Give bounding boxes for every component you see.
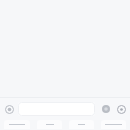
button[interactable]: Suggestion <box>4 120 30 129</box>
button[interactable]: Voice input <box>100 103 112 115</box>
button[interactable]: Suggestion <box>69 120 94 129</box>
button[interactable]: Add attachment <box>3 103 15 115</box>
button[interactable]: Suggestion <box>101 120 126 129</box>
button[interactable]: Send <box>115 103 127 115</box>
button[interactable] <box>18 102 95 116</box>
button[interactable]: Suggestion <box>37 120 62 129</box>
